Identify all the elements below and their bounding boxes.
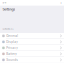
button[interactable]: Display bbox=[0, 39, 64, 45]
staticText: General bbox=[6, 34, 18, 38]
staticText: 9:41 bbox=[2, 1, 7, 4]
button[interactable]: General bbox=[0, 33, 64, 39]
staticText: Privacy bbox=[6, 46, 18, 50]
button[interactable]: Privacy bbox=[0, 45, 64, 51]
staticText: Settings bbox=[2, 7, 15, 11]
staticText: Sounds bbox=[6, 58, 18, 62]
button[interactable]: Battery bbox=[0, 51, 64, 57]
staticText: GENERAL bbox=[2, 28, 13, 31]
staticText: Display bbox=[6, 40, 18, 44]
button[interactable]: Sounds bbox=[0, 57, 64, 63]
staticText: Battery bbox=[6, 52, 17, 56]
